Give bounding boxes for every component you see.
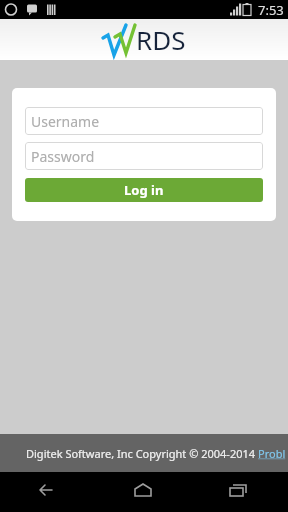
button[interactable]: Log in [25, 178, 263, 202]
staticText: Log in [124, 181, 164, 199]
staticText: Digitek Software, Inc Copyright © 2004-2… [26, 446, 258, 461]
button[interactable]: Problem R… [258, 446, 288, 461]
button[interactable]: Password [25, 142, 263, 170]
staticText: Username [31, 112, 100, 131]
staticText: RDS [136, 22, 186, 57]
staticText: 7:53 [258, 1, 284, 19]
button[interactable]: Username [25, 107, 263, 135]
button[interactable]: Back [18, 472, 78, 512]
staticText: Password [31, 147, 95, 166]
button[interactable]: Home [114, 472, 174, 512]
button[interactable]: Recents [210, 472, 270, 512]
